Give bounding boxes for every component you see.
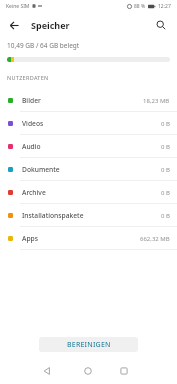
button[interactable]: Videos (0, 112, 177, 135)
button[interactable] (43, 367, 51, 375)
staticText: Keine SIM (6, 3, 30, 10)
staticText: 0 B (161, 166, 170, 174)
staticText: Speicher (31, 19, 70, 31)
button[interactable] (10, 21, 19, 30)
button[interactable]: Bilder (0, 89, 177, 112)
button[interactable] (156, 20, 166, 30)
button[interactable] (84, 367, 92, 375)
staticText: BEREINIGEN (67, 340, 111, 350)
staticText: 88 % (134, 3, 146, 10)
button[interactable]: Audio (0, 135, 177, 158)
staticText: 10,49 GB / 64 GB belegt (7, 41, 80, 50)
button[interactable]: Installationspakete (0, 204, 177, 227)
staticText: 0 B (161, 143, 170, 151)
button[interactable]: Apps (0, 227, 177, 250)
staticText: Audio (22, 142, 41, 151)
staticText: NUTZERDATEN (7, 74, 49, 81)
staticText: Videos (22, 119, 44, 128)
staticText: Archive (22, 188, 46, 197)
staticText: 0 B (161, 189, 170, 197)
staticText: 18,23 MB (143, 97, 170, 105)
staticText: Apps (22, 234, 38, 243)
staticText: 0 B (161, 212, 170, 220)
staticText: Installationspakete (22, 211, 84, 220)
staticText: 662,32 MB (140, 235, 170, 243)
staticText: Bilder (22, 96, 41, 105)
button[interactable]: Dokumente (0, 158, 177, 181)
staticText: 12:27 (158, 3, 171, 10)
button[interactable]: Archive (0, 181, 177, 204)
staticText: Dokumente (22, 165, 60, 174)
staticText: 0 B (161, 120, 170, 128)
button[interactable] (120, 367, 128, 375)
button[interactable]: BEREINIGEN (39, 337, 138, 352)
